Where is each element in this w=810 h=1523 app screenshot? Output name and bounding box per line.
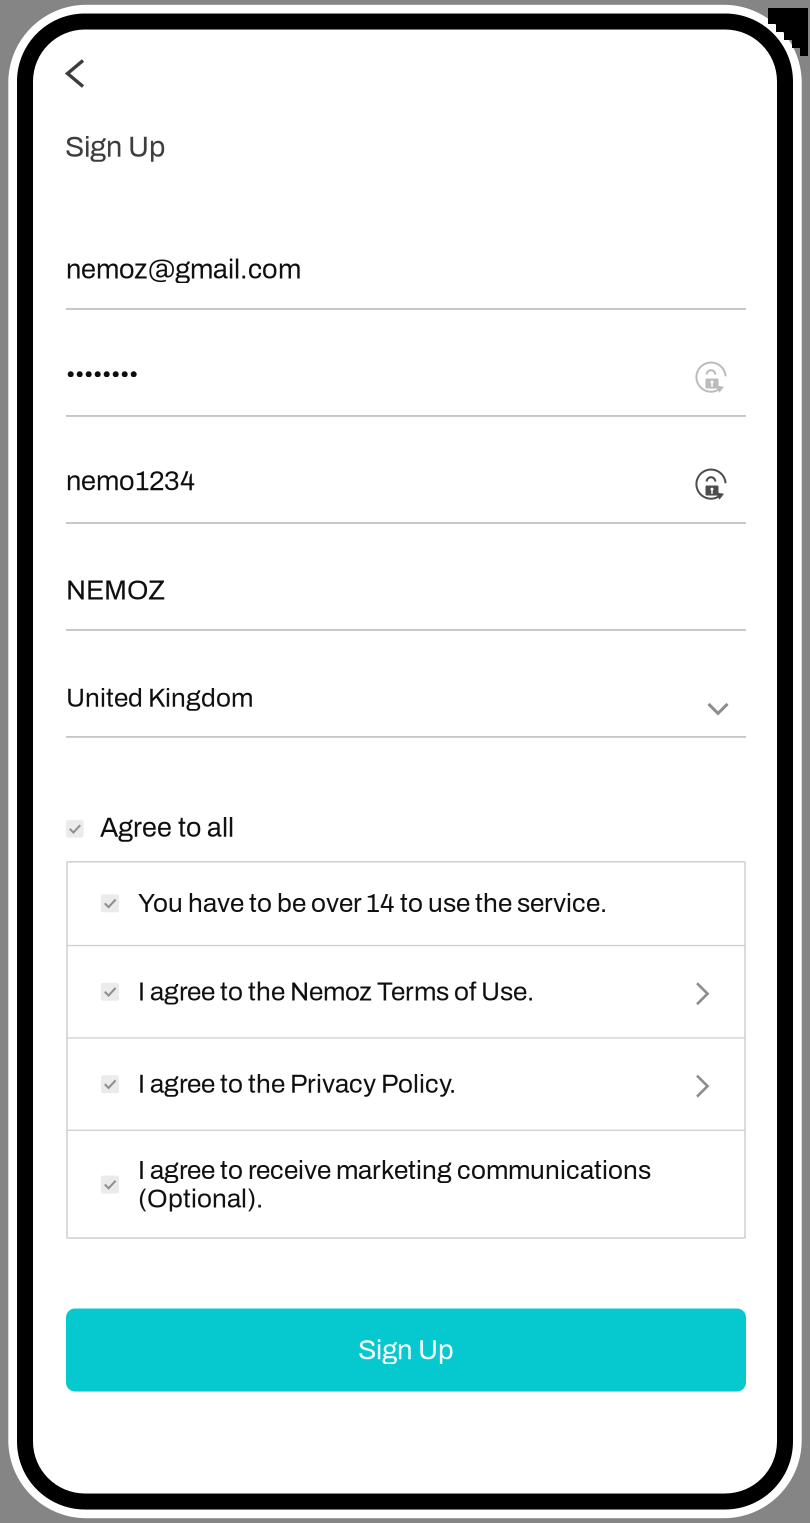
staticText: nemoz@gmail.com [66,254,301,284]
staticText: Agree to all [100,813,234,842]
staticText: I agree to receive marketing communicati… [138,1156,651,1213]
staticText: I agree to the Nemoz Terms of Use. [138,977,534,1006]
button[interactable]: You have to be over 14 to use the servic… [67,862,745,945]
staticText: You have to be over 14 to use the servic… [138,889,607,917]
button[interactable]: I agree to receive marketing communicati… [67,1131,745,1238]
button[interactable]: Choose country [707,691,746,705]
staticText: NEMOZ [66,575,165,605]
button[interactable]: Sign Up [66,1308,746,1391]
staticText: Sign Up [65,131,165,163]
staticText: Sign Up [358,1335,454,1365]
staticText: nemo1234 [66,466,195,496]
button[interactable]: Reset password [695,357,746,391]
button[interactable]: Show password [695,464,746,498]
button[interactable]: I agree to the Privacy Policy. [67,1039,745,1130]
button[interactable]: Back [33,48,103,98]
staticText: •••••••• [66,361,138,387]
staticText: I agree to the Privacy Policy. [138,1070,456,1098]
button[interactable]: I agree to the Nemoz Terms of Use. [67,946,745,1037]
staticText: United Kingdom [66,684,253,712]
button[interactable]: Agree to all [33,809,777,847]
